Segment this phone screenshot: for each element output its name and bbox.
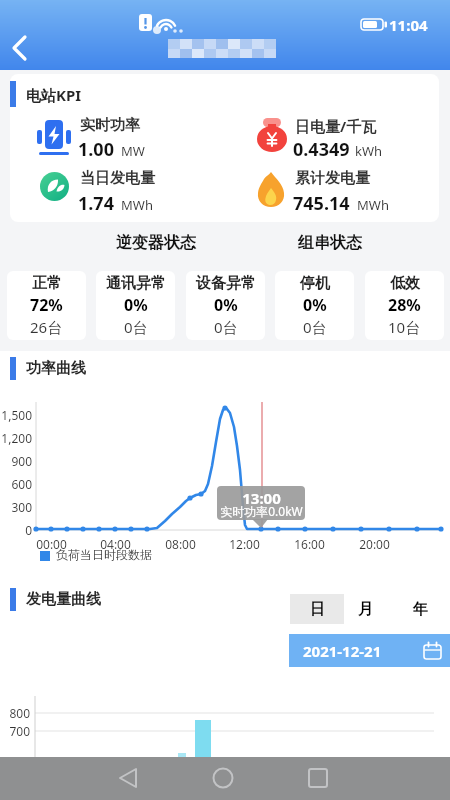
staticText: 11:04 xyxy=(389,15,428,35)
staticText: 72% xyxy=(30,294,63,316)
staticText: MW xyxy=(121,142,145,160)
staticText: 发电量曲线 xyxy=(26,590,101,609)
staticText: 日 xyxy=(310,600,325,619)
button[interactable]: 日 xyxy=(290,594,344,624)
staticText: 当日发电量 xyxy=(80,169,155,188)
staticText: 0 xyxy=(25,522,32,538)
staticText: 电站KPI xyxy=(26,85,82,105)
button[interactable] xyxy=(294,757,342,800)
staticText: 功率曲线 xyxy=(26,359,86,378)
staticText: 1,500 xyxy=(1,407,32,423)
staticText: 10台 xyxy=(388,317,421,337)
staticText: 26台 xyxy=(30,317,63,337)
staticText: 28% xyxy=(388,294,421,316)
staticText: 0% xyxy=(214,294,238,316)
staticText: 实时功率 xyxy=(80,116,140,135)
staticText: 0台 xyxy=(214,317,238,337)
staticText: 0.4349 xyxy=(293,137,350,162)
staticText: 0% xyxy=(303,294,327,316)
staticText: 00:00 xyxy=(36,536,67,552)
staticText: 年 xyxy=(413,600,428,619)
staticText: 负荷当日时段数据 xyxy=(56,547,152,562)
staticText: 停机 xyxy=(300,274,330,293)
button[interactable]: 2021-12-21 xyxy=(289,634,450,667)
staticText: 月 xyxy=(358,600,373,619)
staticText: MWh xyxy=(121,196,153,214)
button[interactable]: 月 xyxy=(338,594,392,624)
staticText: 正常 xyxy=(32,274,62,293)
button[interactable]: 正常 xyxy=(7,271,86,340)
staticText: MWh xyxy=(357,196,389,214)
staticText: 实时功率0.0kW xyxy=(220,503,303,519)
staticText: kWh xyxy=(355,142,383,160)
staticText: 通讯异常 xyxy=(106,274,166,293)
staticText: 300 xyxy=(11,499,32,515)
staticText: 1,200 xyxy=(1,430,32,446)
button[interactable]: 低效 xyxy=(365,271,444,340)
staticText: 700 xyxy=(9,723,30,739)
button[interactable]: 年 xyxy=(394,594,446,624)
button[interactable] xyxy=(10,74,439,222)
staticText: 低效 xyxy=(390,274,420,293)
button[interactable]: 停机 xyxy=(275,271,354,340)
staticText: 0% xyxy=(124,294,148,316)
staticText: 日电量/千瓦 xyxy=(295,116,377,136)
staticText: 累计发电量 xyxy=(295,169,370,188)
staticText: 设备异常 xyxy=(196,274,256,293)
button[interactable] xyxy=(104,757,152,800)
staticText: 20:00 xyxy=(359,536,390,552)
staticText: 2021-12-21 xyxy=(303,641,382,661)
staticText: 0台 xyxy=(124,317,148,337)
staticText: 900 xyxy=(11,453,32,469)
staticText: 08:00 xyxy=(165,536,196,552)
staticText: 13:00 xyxy=(242,488,281,508)
staticText: 600 xyxy=(11,476,32,492)
button[interactable]: 通讯异常 xyxy=(96,271,175,340)
staticText: 16:00 xyxy=(294,536,325,552)
staticText: 12:00 xyxy=(229,536,260,552)
staticText: 04:00 xyxy=(100,536,131,552)
staticText: 800 xyxy=(9,705,30,721)
staticText: 0台 xyxy=(303,317,327,337)
button[interactable]: 设备异常 xyxy=(186,271,265,340)
staticText: 逆变器状态 xyxy=(116,233,196,253)
staticText: 组串状态 xyxy=(298,233,362,253)
button[interactable] xyxy=(199,757,247,800)
button[interactable] xyxy=(0,30,44,70)
staticText: 745.14 xyxy=(293,191,350,216)
staticText: 1.00 xyxy=(78,137,114,162)
staticText: 1.74 xyxy=(78,191,114,216)
